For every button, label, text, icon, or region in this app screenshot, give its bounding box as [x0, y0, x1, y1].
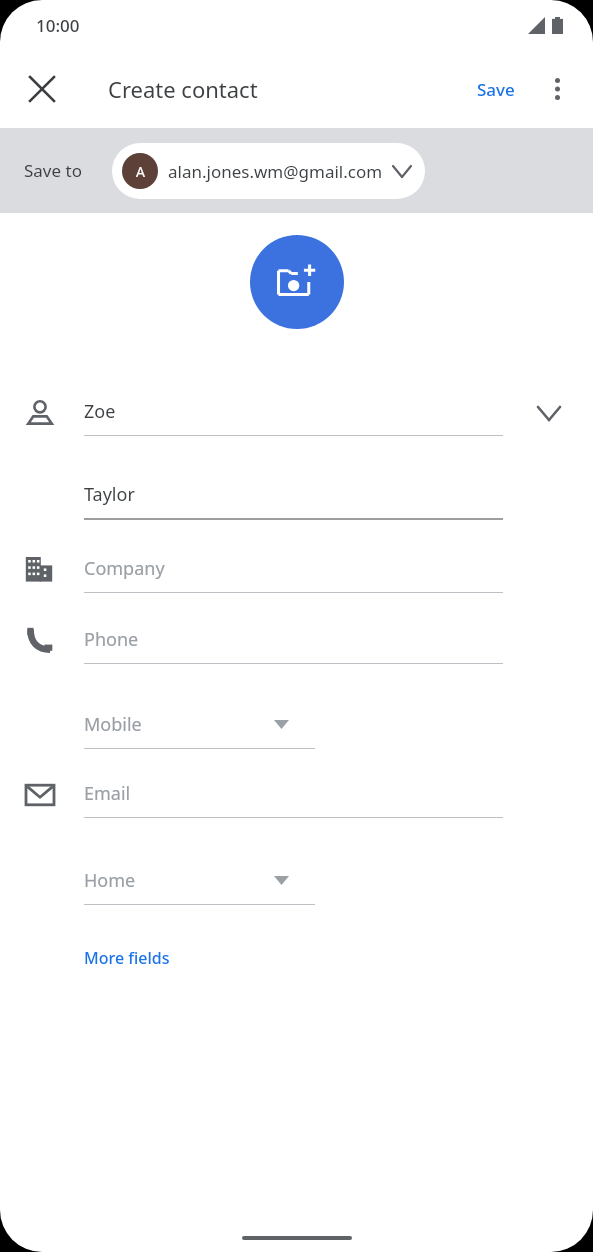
button[interactable]: Mobile: [84, 704, 315, 749]
button[interactable]: Add photo: [250, 235, 344, 329]
staticText: alan.jones.wm@gmail.com: [168, 160, 383, 183]
staticText: 10:00: [36, 14, 80, 37]
staticText: Email: [84, 781, 131, 806]
staticText: Zoe: [84, 399, 116, 424]
staticText: Home: [84, 868, 136, 893]
staticText: Company: [84, 556, 165, 581]
button[interactable]: Zoe: [84, 391, 503, 436]
button[interactable]: Home: [84, 860, 315, 905]
button[interactable]: Company: [84, 548, 503, 593]
button[interactable]: Phone: [84, 619, 503, 664]
button[interactable]: Expand name fields: [527, 391, 571, 435]
button[interactable]: Email: [84, 773, 503, 818]
button[interactable]: Save: [469, 68, 523, 111]
button[interactable]: Close: [14, 61, 70, 117]
staticText: A: [136, 162, 145, 181]
staticText: Save to: [24, 159, 82, 182]
staticText: Taylor: [84, 482, 135, 507]
button[interactable]: More fields: [84, 943, 170, 973]
staticText: Create contact: [108, 74, 258, 104]
staticText: Mobile: [84, 712, 142, 737]
button[interactable]: A: [112, 143, 425, 199]
button[interactable]: Taylor: [84, 474, 503, 520]
staticText: Phone: [84, 627, 139, 652]
button[interactable]: More options: [535, 67, 579, 111]
